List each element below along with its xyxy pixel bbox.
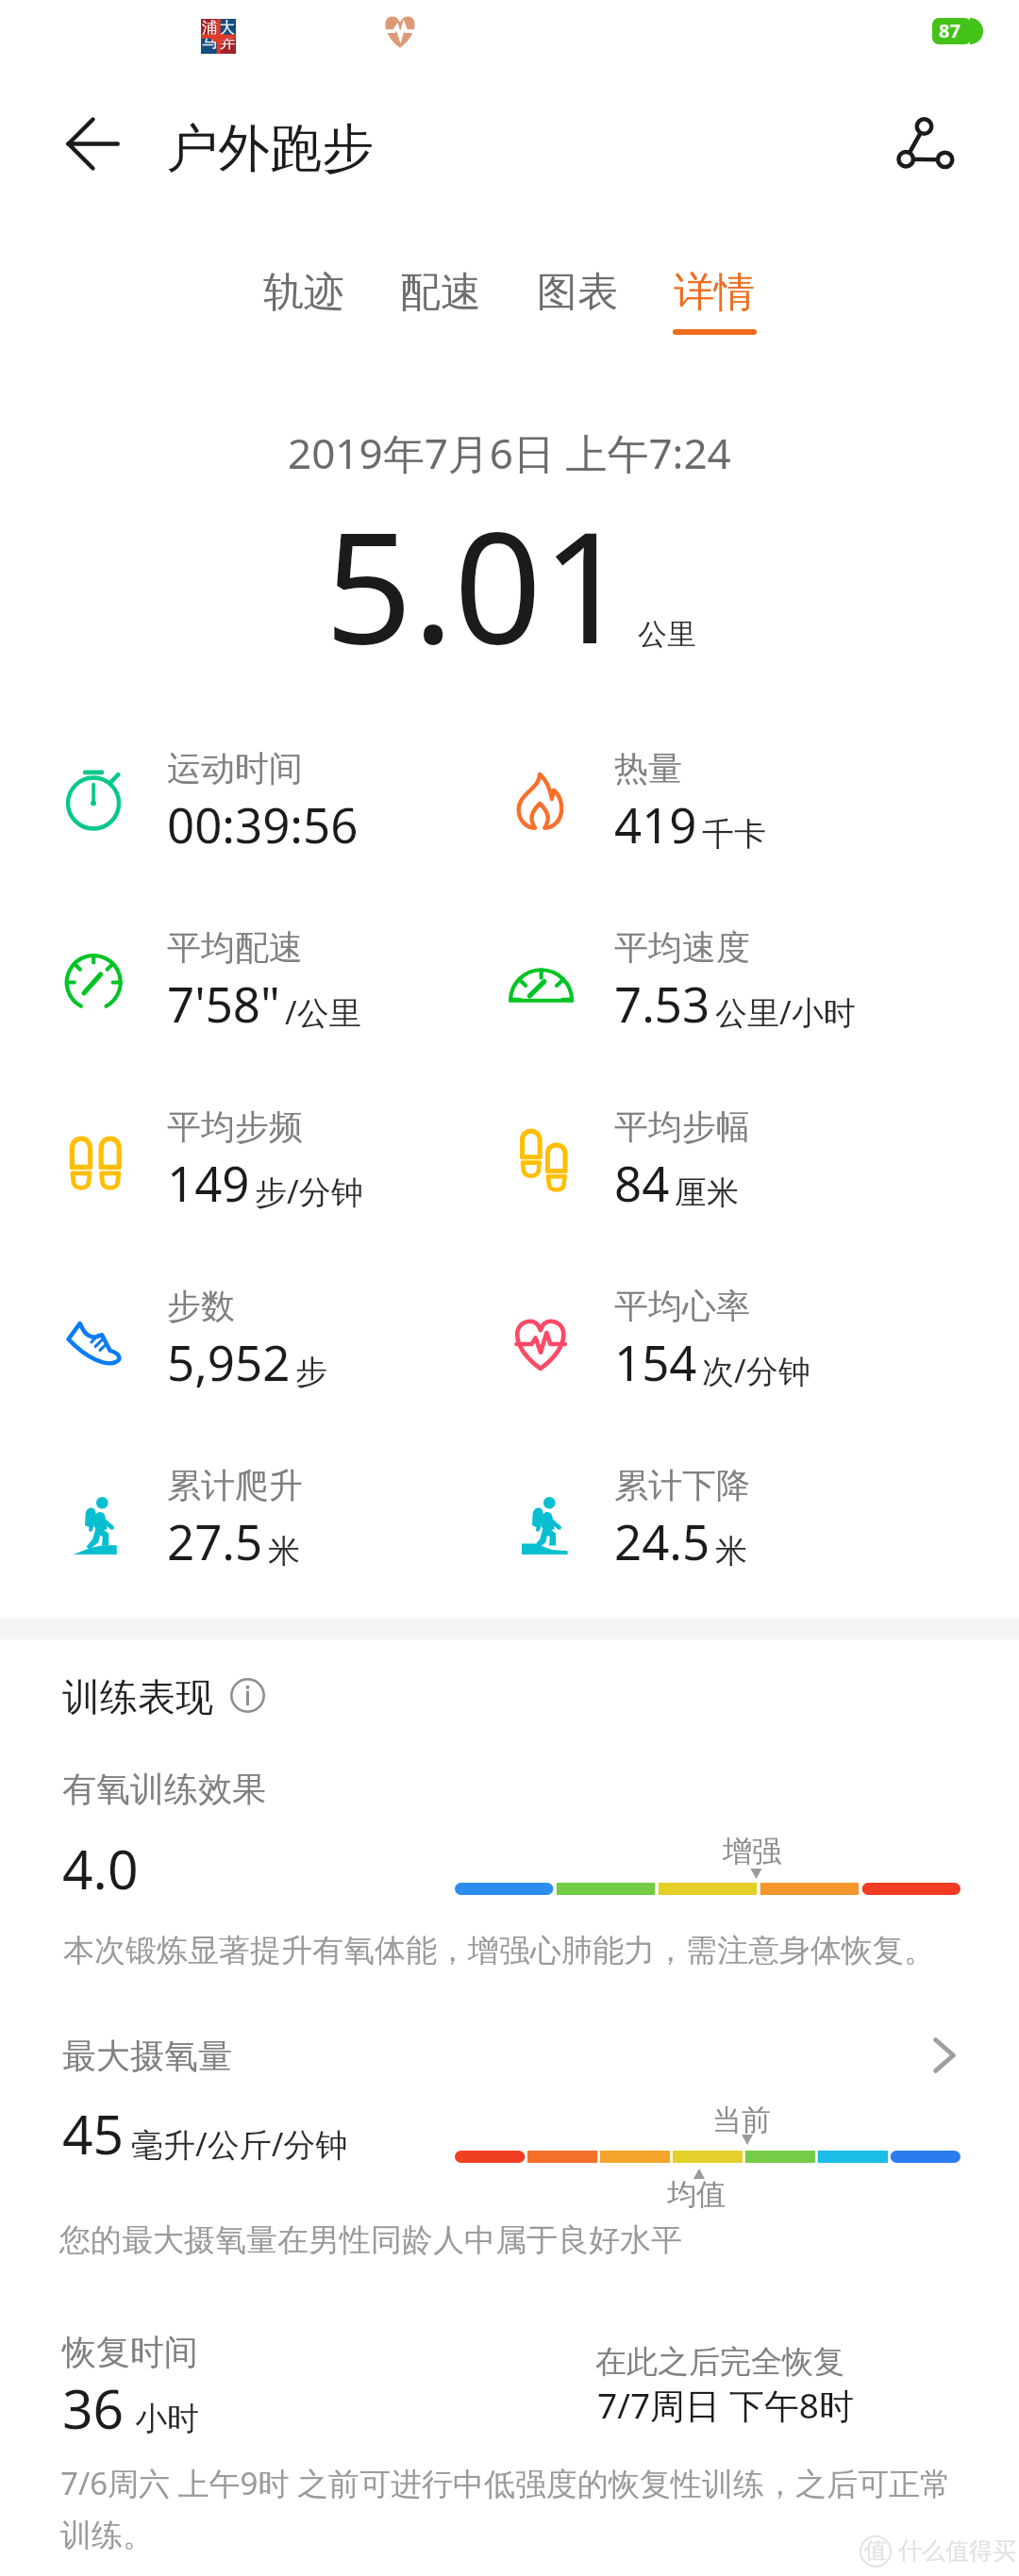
button[interactable]: 轨迹 — [236, 255, 372, 345]
button[interactable]: 最大摄氧量 — [57, 2019, 962, 2092]
staticText: 配速 — [400, 267, 481, 318]
staticText: 热量 — [614, 747, 682, 789]
staticText: 米 — [268, 1531, 300, 1571]
button[interactable]: 详情 — [646, 255, 782, 345]
staticText: 419 — [614, 791, 697, 856]
button[interactable]: About training performance — [230, 1678, 265, 1713]
staticText: 7/6周六 上午9时 之前可进行中低强度的恢复性训练，之后可正常训练。 — [60, 2462, 971, 2555]
staticText: 恢复时间 — [62, 2331, 198, 2373]
staticText: 36 — [62, 2371, 125, 2445]
staticText: 平均心率 — [614, 1285, 750, 1327]
staticText: 厘米 — [675, 1172, 739, 1213]
staticText: 小时 — [135, 2399, 199, 2439]
staticText: 有氧训练效果 — [62, 1768, 266, 1810]
staticText: 户外跑步 — [166, 116, 374, 181]
staticText: 大 — [219, 18, 235, 38]
staticText: 弄 — [219, 32, 235, 52]
button[interactable]: 平均步幅 — [504, 1092, 947, 1253]
staticText: 均值 — [667, 2176, 726, 2213]
button[interactable]: Back — [66, 117, 120, 171]
staticText: 您的最大摄氧量在男性同龄人中属于良好水平 — [59, 2220, 682, 2260]
staticText: 千卡 — [702, 814, 766, 855]
staticText: 平均配速 — [167, 926, 303, 969]
staticText: 累计爬升 — [167, 1464, 303, 1506]
staticText: 毫升/公斤/分钟 — [131, 2122, 348, 2166]
staticText: 00:39:56 — [167, 791, 359, 856]
staticText: 增强 — [723, 1833, 781, 1870]
button[interactable]: Share — [892, 112, 957, 177]
staticText: 在此之后完全恢复 — [595, 2342, 844, 2382]
button[interactable]: 累计下降 — [504, 1451, 947, 1611]
staticText: 值 — [864, 2536, 887, 2565]
staticText: 累计下降 — [614, 1464, 750, 1506]
staticText: 次/分钟 — [702, 1349, 810, 1392]
staticText: 马 — [202, 32, 218, 52]
staticText: 5,952 — [167, 1329, 291, 1394]
staticText: 轨迹 — [263, 267, 344, 318]
staticText: 图表 — [537, 267, 618, 318]
staticText: 154 — [614, 1329, 697, 1394]
button[interactable]: 累计爬升 — [57, 1451, 500, 1611]
staticText: 当前 — [712, 2102, 771, 2138]
button[interactable]: 平均配速 — [57, 913, 500, 1073]
staticText: 149 — [167, 1150, 250, 1215]
staticText: 步/分钟 — [255, 1170, 363, 1213]
staticText: 7.53 — [614, 971, 710, 1036]
staticText: 平均速度 — [614, 926, 750, 969]
button[interactable]: 热量 — [504, 734, 947, 894]
button[interactable]: 步数 — [57, 1271, 500, 1432]
staticText: 平均步幅 — [614, 1105, 750, 1148]
staticText: 最大摄氧量 — [62, 2035, 232, 2077]
other: Open VO2 max details — [920, 2031, 969, 2080]
staticText: 24.5 — [614, 1508, 710, 1573]
staticText: 84 — [614, 1150, 670, 1215]
button[interactable]: 平均步频 — [57, 1092, 500, 1253]
staticText: 7/7周日 下午8时 — [597, 2381, 854, 2429]
button[interactable]: 平均速度 — [504, 913, 947, 1073]
staticText: 本次锻炼显著提升有氧体能，增强心肺能力，需注意身体恢复。 — [63, 1931, 935, 1970]
button[interactable]: 运动时间 — [57, 734, 500, 894]
staticText: 45 — [62, 2097, 125, 2170]
staticText: 27.5 — [167, 1508, 263, 1573]
staticText: 步 — [295, 1352, 327, 1392]
button[interactable]: 平均心率 — [504, 1271, 947, 1432]
button[interactable]: 配速 — [373, 255, 509, 345]
staticText: 公里 — [638, 616, 696, 653]
staticText: 什么值得买 — [898, 2536, 1016, 2566]
staticText: 87 — [939, 18, 961, 43]
staticText: 平均步频 — [167, 1105, 303, 1148]
staticText: 4.0 — [62, 1832, 139, 1905]
staticText: 公里/小时 — [715, 990, 856, 1034]
staticText: 浦 — [202, 18, 218, 38]
staticText: 步数 — [167, 1285, 235, 1327]
staticText: 运动时间 — [167, 747, 303, 789]
staticText: /公里 — [285, 990, 361, 1034]
button[interactable]: 图表 — [509, 255, 645, 345]
staticText: 5.01 — [325, 479, 630, 689]
staticText: 训练表现 — [62, 1673, 213, 1720]
staticText: 米 — [715, 1531, 747, 1571]
staticText: 详情 — [674, 267, 755, 318]
staticText: 2019年7月6日 上午7:24 — [288, 424, 731, 481]
staticText: 7'58" — [167, 971, 280, 1036]
